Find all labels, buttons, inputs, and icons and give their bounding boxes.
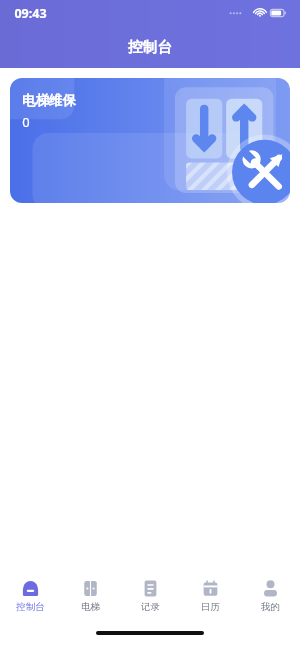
button[interactable]: 电梯: [60, 570, 120, 622]
staticText: 09:43: [14, 5, 47, 22]
staticText: 日历: [201, 601, 220, 613]
staticText: 控制台: [16, 601, 45, 613]
staticText: 控制台: [128, 38, 172, 56]
staticText: 电梯维保: [22, 92, 76, 109]
button[interactable]: 电梯维保: [10, 78, 290, 203]
staticText: 0: [22, 113, 30, 131]
button[interactable]: 日历: [180, 570, 240, 622]
button[interactable]: 我的: [240, 570, 300, 622]
staticText: 电梯: [81, 601, 100, 613]
staticText: 我的: [261, 601, 280, 613]
staticText: 记录: [141, 601, 160, 613]
button[interactable]: 控制台: [0, 570, 60, 622]
button[interactable]: 记录: [120, 570, 180, 622]
